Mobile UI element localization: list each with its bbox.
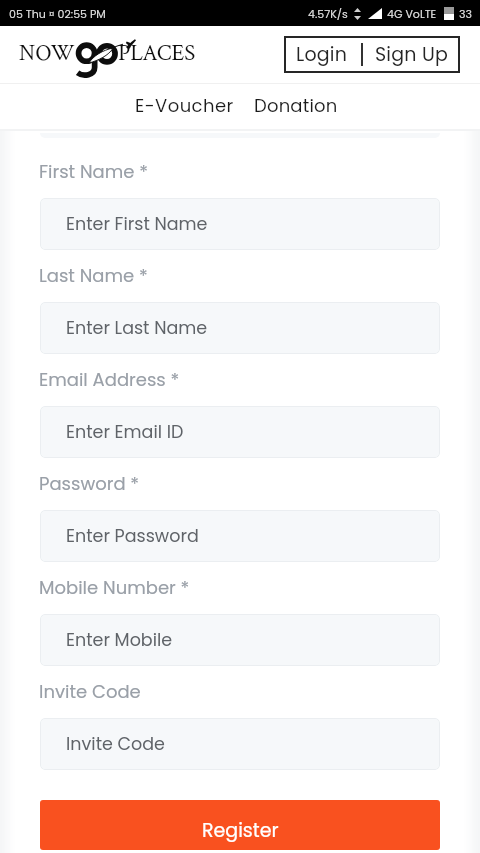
staticText: Mobile Number * xyxy=(39,575,190,600)
button[interactable]: Sign Up xyxy=(365,37,457,72)
staticText: Email Address * xyxy=(39,367,180,392)
staticText: Enter Last Name xyxy=(66,316,208,341)
staticText: Register xyxy=(202,817,279,844)
staticText: Enter First Name xyxy=(66,212,208,237)
staticText: 33 xyxy=(459,6,472,21)
button[interactable]: Enter Mobile xyxy=(40,614,440,666)
button[interactable]: Invite Code xyxy=(40,718,440,770)
staticText: Password * xyxy=(39,471,140,496)
button[interactable]: E-Voucher xyxy=(125,85,244,126)
staticText: Invite Code xyxy=(39,679,141,704)
staticText: Enter Email ID xyxy=(66,420,184,445)
staticText: Last Name * xyxy=(39,263,148,288)
staticText: Invite Code xyxy=(66,732,165,757)
staticText: E-Voucher xyxy=(135,93,234,118)
button[interactable]: Donation xyxy=(244,85,348,126)
button[interactable]: Enter Email ID xyxy=(40,406,440,458)
button[interactable]: Enter Password xyxy=(40,510,440,562)
staticText: PLACES xyxy=(118,38,196,68)
button[interactable]: Enter Last Name xyxy=(40,302,440,354)
staticText: 4.57K/s xyxy=(308,6,348,21)
staticText: First Name * xyxy=(39,159,149,184)
button[interactable]: Enter First Name xyxy=(40,198,440,250)
staticText: NOW xyxy=(19,38,75,68)
button[interactable]: Login xyxy=(284,37,359,72)
staticText: Enter Mobile xyxy=(66,628,173,653)
staticText: Login xyxy=(296,41,348,68)
staticText: Donation xyxy=(254,93,338,118)
staticText: Enter Password xyxy=(66,524,199,549)
staticText: 4G VoLTE xyxy=(387,6,437,21)
staticText: 05 Thu ¤ 02:55 PM xyxy=(9,6,106,21)
button[interactable]: Register xyxy=(40,800,440,850)
staticText: Sign Up xyxy=(375,41,448,68)
